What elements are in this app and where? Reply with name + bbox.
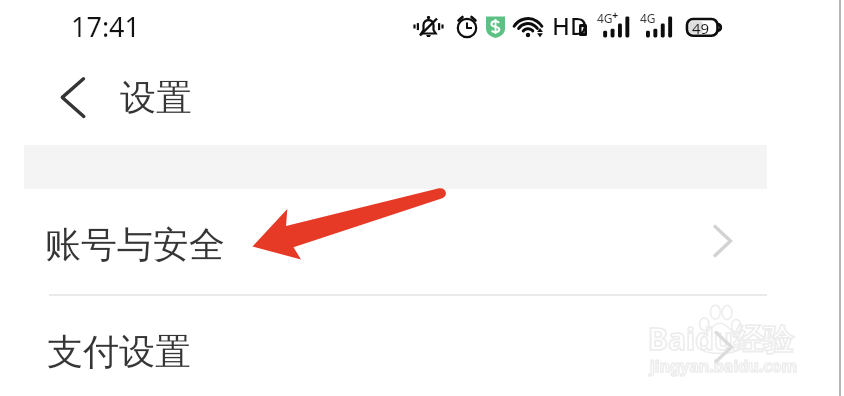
staticText: Baidu经验 [648,318,794,359]
button[interactable]: Back [40,68,106,128]
staticText: jingyan.baidu.com [650,355,798,377]
staticText: 4G [640,10,656,26]
staticText: 49 [692,18,710,38]
staticText: 账号与安全 [45,222,225,267]
staticText: 17:41 [71,8,141,45]
button[interactable]: 账号与安全 [0,189,844,295]
staticText: 设置 [120,75,192,120]
button[interactable]: 支付设置 [0,296,844,396]
staticText: HD [552,9,588,42]
staticText: 支付设置 [47,329,191,374]
staticText: 4G [597,10,613,26]
staticText: + [612,7,619,22]
